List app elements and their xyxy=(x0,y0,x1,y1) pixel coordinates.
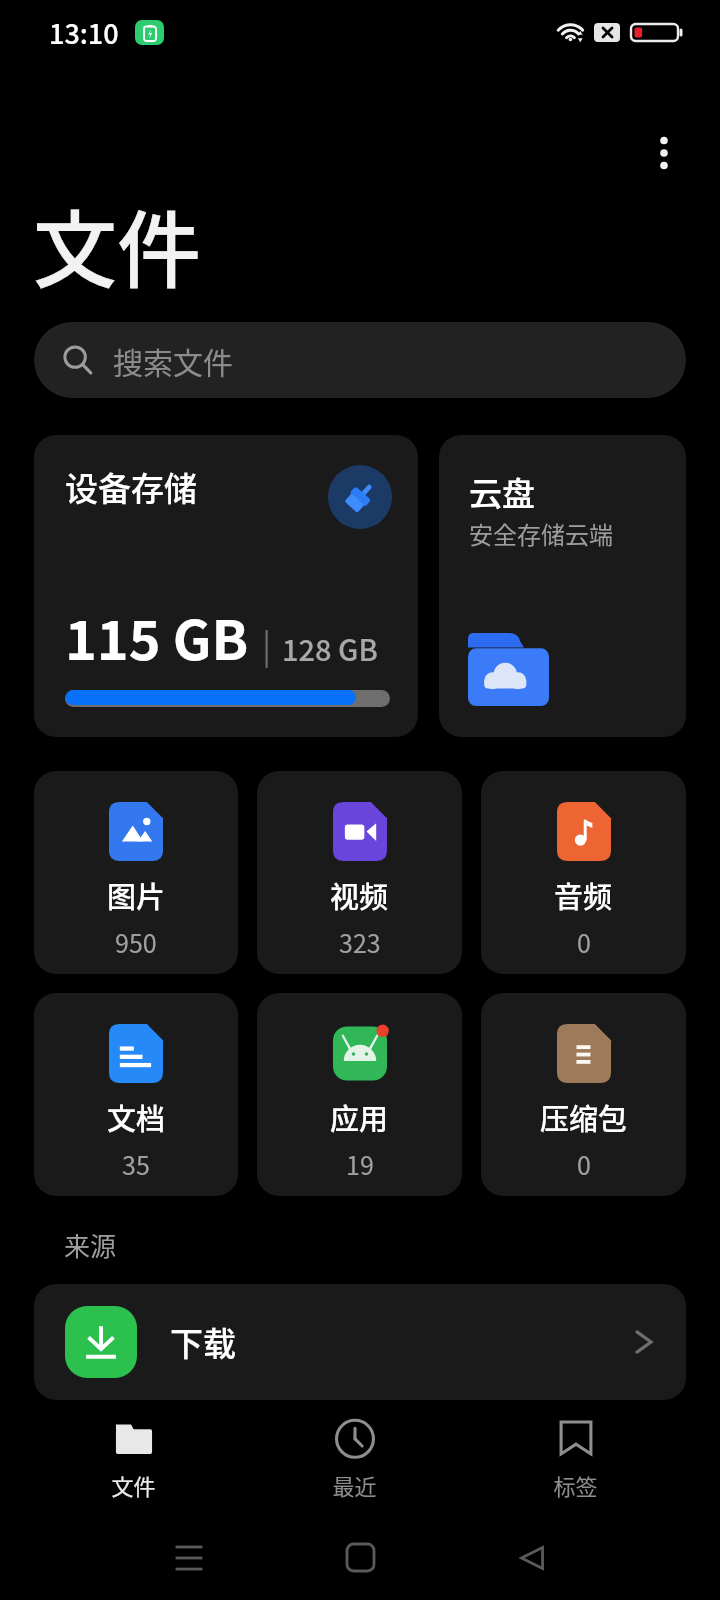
button[interactable]: 图片 xyxy=(34,771,238,974)
staticText: 文件 xyxy=(111,1469,156,1501)
staticText: 图片 xyxy=(107,874,166,916)
button[interactable]: More options xyxy=(630,123,698,182)
staticText: 音频 xyxy=(554,874,613,916)
staticText: 最近 xyxy=(332,1469,377,1501)
button[interactable]: 搜索文件 xyxy=(34,322,686,398)
button[interactable]: 文档 xyxy=(34,993,238,1196)
staticText: 115 GB xyxy=(65,597,249,675)
button[interactable]: 标签 xyxy=(465,1400,686,1515)
staticText: 35 xyxy=(122,1146,150,1182)
button[interactable]: 压缩包 xyxy=(481,993,686,1196)
button[interactable]: 视频 xyxy=(257,771,462,974)
staticText: | xyxy=(262,620,272,669)
button[interactable]: 最近 xyxy=(244,1400,465,1515)
staticText: 下载 xyxy=(170,1318,236,1366)
staticText: 19 xyxy=(346,1146,374,1182)
staticText: 950 xyxy=(115,924,157,960)
button[interactable]: 设备存储 xyxy=(34,435,418,737)
staticText: 文件 xyxy=(33,184,202,293)
button[interactable]: 应用 xyxy=(257,993,462,1196)
button[interactable]: 文件 xyxy=(23,1400,244,1515)
button[interactable]: 下载 xyxy=(34,1284,686,1400)
staticText: 设备存储 xyxy=(65,463,197,511)
button[interactable]: Home xyxy=(315,1515,405,1600)
staticText: 13:10 xyxy=(49,13,119,52)
staticText: 文档 xyxy=(107,1096,166,1138)
staticText: 安全存储云端 xyxy=(469,516,613,551)
staticText: 来源 xyxy=(64,1226,117,1264)
staticText: 0 xyxy=(577,1146,591,1182)
staticText: 搜索文件 xyxy=(113,339,233,382)
staticText: 323 xyxy=(339,924,381,960)
staticText: 压缩包 xyxy=(540,1096,628,1138)
staticText: 应用 xyxy=(330,1096,389,1138)
staticText: 视频 xyxy=(330,874,389,916)
button[interactable]: Clean up storage xyxy=(328,465,392,529)
button[interactable]: 音频 xyxy=(481,771,686,974)
staticText: 0 xyxy=(577,924,591,960)
button[interactable]: 云盘 xyxy=(439,435,686,737)
staticText: 128 GB xyxy=(282,627,378,669)
staticText: 云盘 xyxy=(469,468,535,516)
button[interactable]: Back xyxy=(487,1515,577,1600)
button[interactable]: Recent apps xyxy=(144,1515,234,1600)
staticText: 标签 xyxy=(553,1469,598,1501)
